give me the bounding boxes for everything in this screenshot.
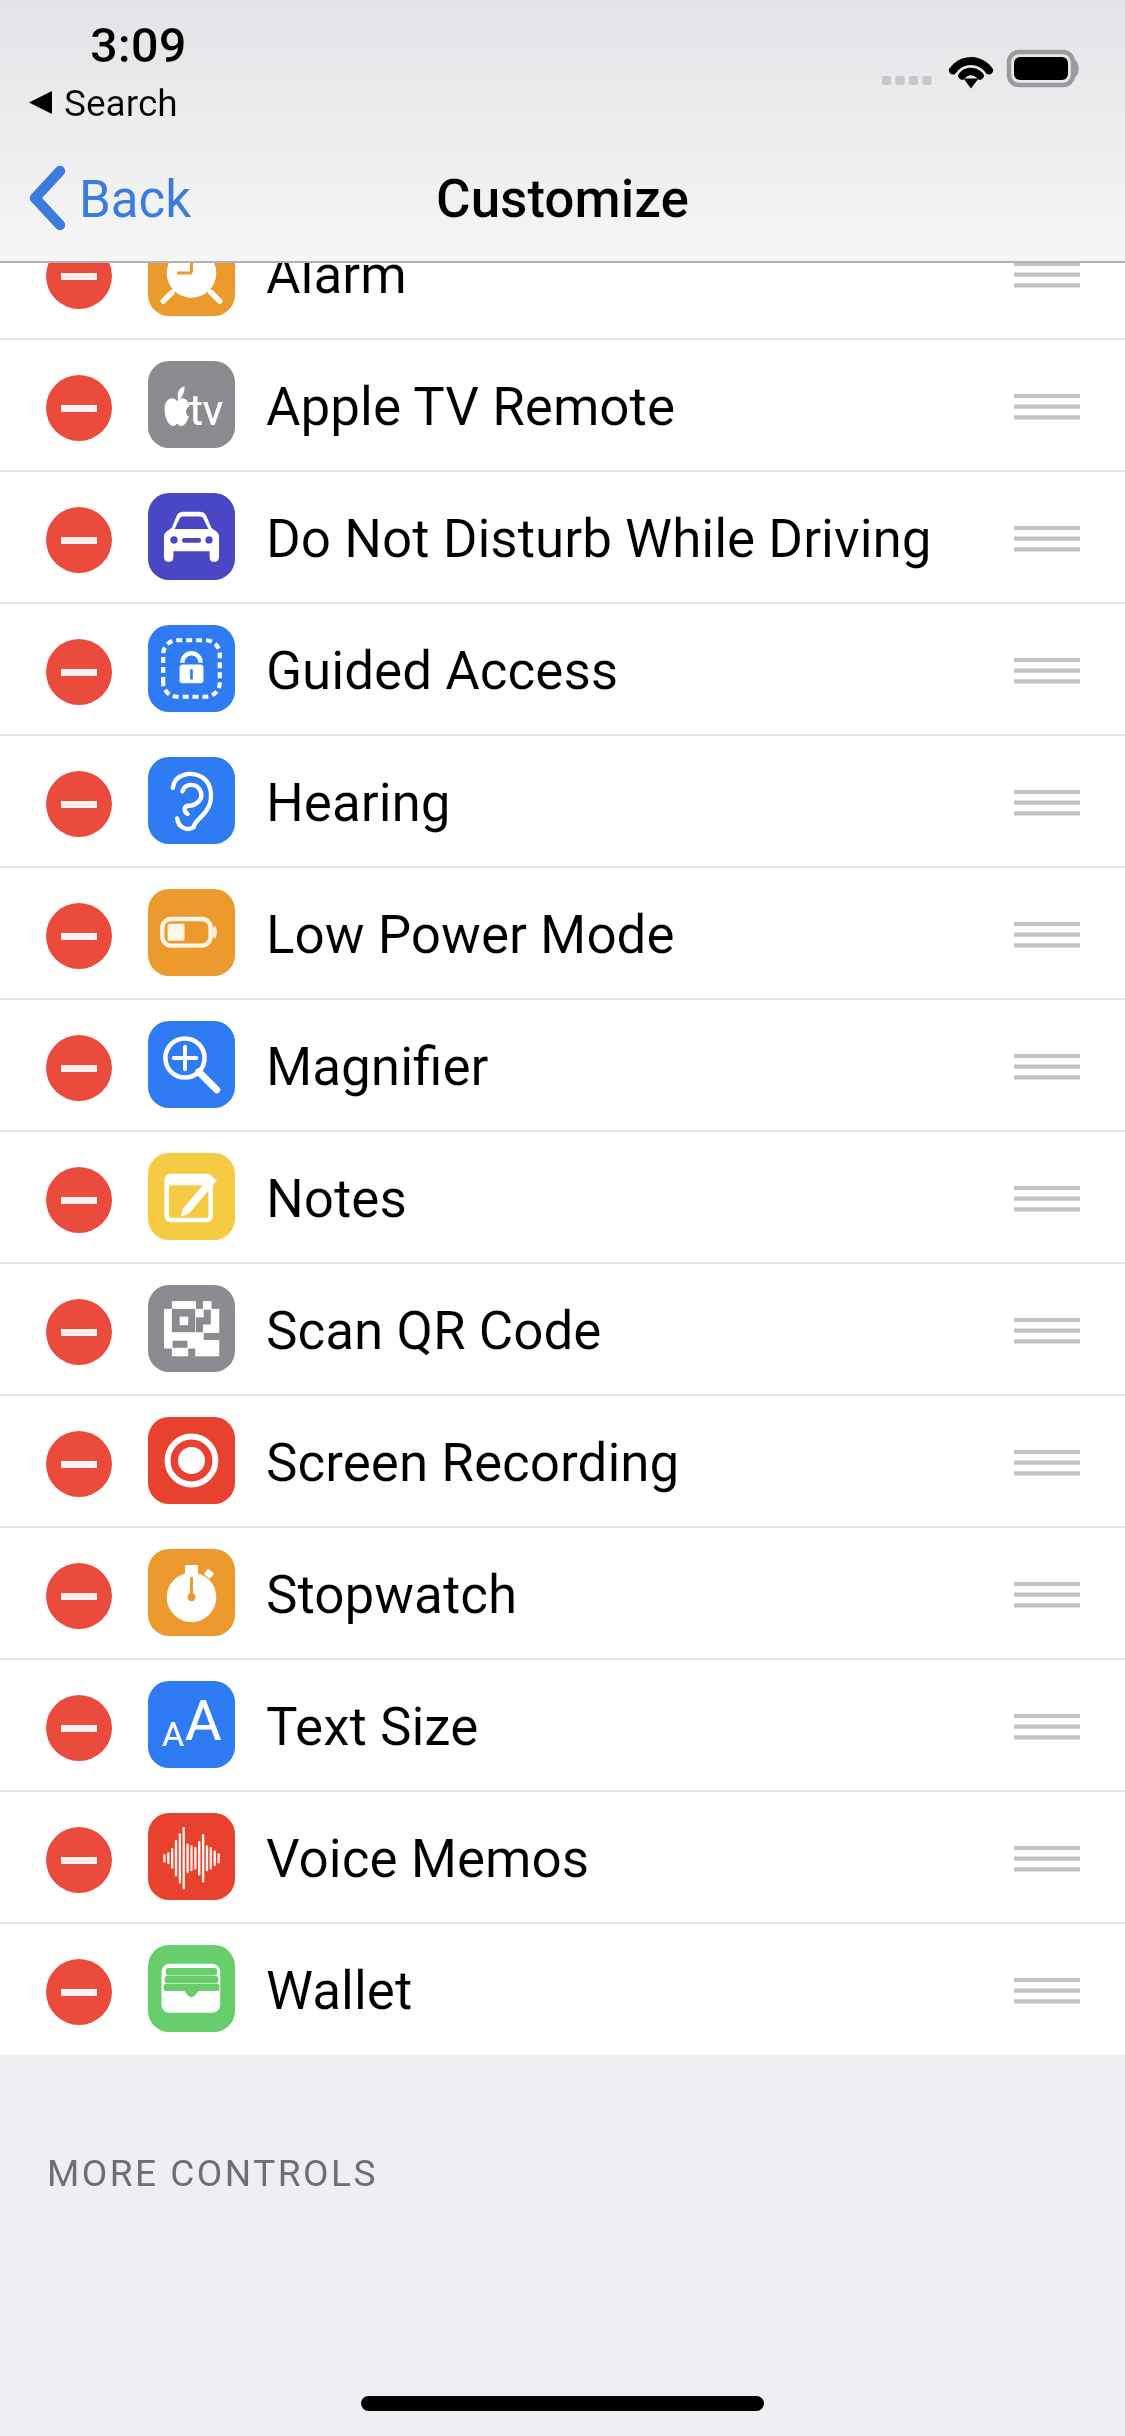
- staticText: Screen Recording: [266, 1432, 680, 1494]
- staticText: A: [162, 1714, 185, 1754]
- button[interactable]: Remove Wallet: [46, 1959, 112, 2025]
- button[interactable]: Remove Guided Access: [0, 602, 1125, 734]
- button[interactable]: Remove Low Power Mode: [46, 903, 112, 969]
- staticText: Stopwatch: [266, 1564, 518, 1626]
- button[interactable]: Remove Alarm: [0, 206, 1125, 338]
- button[interactable]: Reorder Hearing: [969, 734, 1125, 866]
- button[interactable]: Remove Scan QR Code: [0, 1262, 1125, 1394]
- button[interactable]: Reorder Voice Memos: [969, 1790, 1125, 1922]
- staticText: tv: [189, 385, 223, 435]
- button[interactable]: Reorder Scan QR Code: [969, 1262, 1125, 1394]
- button[interactable]: Remove Text Size: [0, 1658, 1125, 1790]
- button[interactable]: Remove Notes: [0, 1130, 1125, 1262]
- button[interactable]: Remove Wallet: [0, 1922, 1125, 2054]
- button[interactable]: Remove Hearing: [0, 734, 1125, 866]
- button[interactable]: Remove Text Size: [46, 1695, 112, 1761]
- staticText: Guided Access: [266, 640, 619, 702]
- button[interactable]: Remove Stopwatch: [46, 1563, 112, 1629]
- staticText: MORE CONTROLS: [47, 2152, 378, 2195]
- button[interactable]: Remove Screen Recording: [46, 1431, 112, 1497]
- staticText: Back: [79, 170, 192, 230]
- button[interactable]: Remove Guided Access: [46, 639, 112, 705]
- button[interactable]: Remove Apple TV Remote: [0, 338, 1125, 470]
- staticText: Magnifier: [266, 1036, 489, 1098]
- staticText: Notes: [266, 1168, 407, 1230]
- button[interactable]: Reorder Notes: [969, 1130, 1125, 1262]
- staticText: Voice Memos: [266, 1828, 590, 1890]
- staticText: Wallet: [266, 1960, 413, 2022]
- button[interactable]: Remove Stopwatch: [0, 1526, 1125, 1658]
- button[interactable]: Remove Apple TV Remote: [46, 375, 112, 441]
- button[interactable]: Remove Low Power Mode: [0, 866, 1125, 998]
- staticText: Search: [64, 82, 178, 125]
- button[interactable]: Remove Magnifier: [0, 998, 1125, 1130]
- button[interactable]: Remove Magnifier: [46, 1035, 112, 1101]
- button[interactable]: Remove Voice Memos: [46, 1827, 112, 1893]
- button[interactable]: Remove Screen Recording: [0, 1394, 1125, 1526]
- staticText: A: [185, 1688, 222, 1754]
- button[interactable]: Back: [28, 153, 192, 243]
- staticText: Apple TV Remote: [266, 376, 676, 438]
- staticText: Customize: [0, 168, 1125, 230]
- staticText: Text Size: [266, 1696, 479, 1758]
- staticText: Alarm: [266, 244, 407, 306]
- button[interactable]: Remove Do Not Disturb While Driving: [0, 470, 1125, 602]
- staticText: 3:09: [90, 17, 187, 74]
- button[interactable]: Reorder Apple TV Remote: [969, 338, 1125, 470]
- button[interactable]: Remove Notes: [46, 1167, 112, 1233]
- staticText: Do Not Disturb While Driving: [266, 508, 932, 570]
- button[interactable]: Remove Hearing: [46, 771, 112, 837]
- staticText: Hearing: [266, 772, 451, 834]
- button[interactable]: Reorder Low Power Mode: [969, 866, 1125, 998]
- button[interactable]: Reorder Stopwatch: [969, 1526, 1125, 1658]
- button[interactable]: Remove Do Not Disturb While Driving: [46, 507, 112, 573]
- button[interactable]: Reorder Guided Access: [969, 602, 1125, 734]
- button[interactable]: Reorder Screen Recording: [969, 1394, 1125, 1526]
- button[interactable]: Reorder Text Size: [969, 1658, 1125, 1790]
- button[interactable]: Search: [29, 78, 178, 126]
- button[interactable]: Remove Scan QR Code: [46, 1299, 112, 1365]
- staticText: Low Power Mode: [266, 904, 675, 966]
- button[interactable]: Reorder Alarm: [969, 206, 1125, 338]
- button[interactable]: Remove Alarm: [46, 243, 112, 309]
- button[interactable]: Reorder Wallet: [969, 1922, 1125, 2054]
- button[interactable]: Remove Voice Memos: [0, 1790, 1125, 1922]
- button[interactable]: Reorder Magnifier: [969, 998, 1125, 1130]
- button[interactable]: Reorder Do Not Disturb While Driving: [969, 470, 1125, 602]
- staticText: Scan QR Code: [266, 1300, 602, 1362]
